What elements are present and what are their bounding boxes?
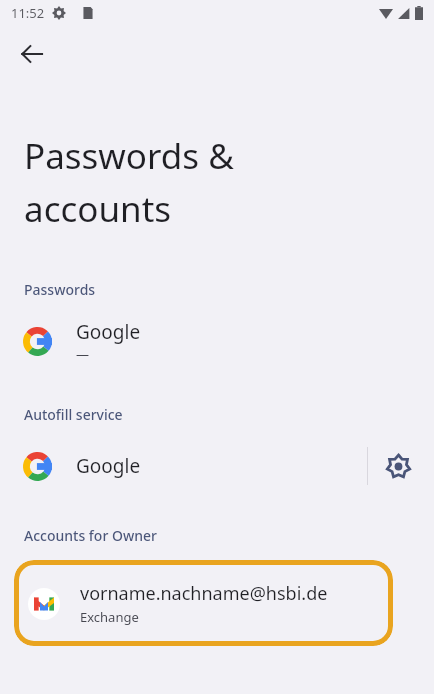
staticText: Passwords & accounts (24, 132, 234, 232)
staticText: Passwords (24, 280, 96, 299)
staticText: Google (76, 453, 141, 479)
button[interactable]: Autofill settings (376, 444, 420, 488)
button[interactable]: Google (0, 440, 434, 492)
button[interactable]: Back (8, 30, 56, 78)
staticText: 11:52 (11, 4, 45, 22)
staticText: Autofill service (24, 405, 123, 424)
staticText: Exchange (80, 608, 139, 626)
button[interactable]: vorname.nachname@hsbi.de (14, 560, 393, 646)
staticText: vorname.nachname@hsbi.de (80, 581, 328, 606)
staticText: Accounts for Owner (24, 526, 157, 545)
staticText: Google (76, 319, 141, 345)
staticText: — (76, 345, 90, 363)
button[interactable]: Google (0, 315, 434, 367)
